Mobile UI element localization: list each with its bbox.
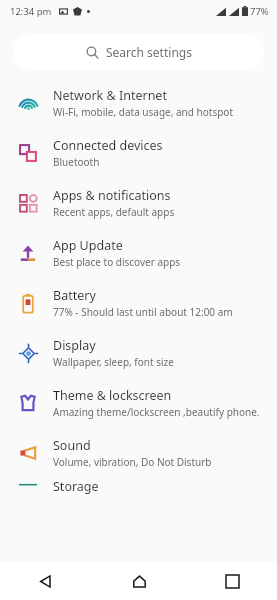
staticText: Sound: [53, 437, 91, 454]
button[interactable]: Sound: [0, 428, 277, 478]
staticText: Storage: [53, 478, 99, 495]
staticText: Wi-Fi, mobile, data usage, and hotspot: [53, 105, 233, 119]
button[interactable]: Connected devices: [0, 128, 277, 178]
staticText: Connected devices: [53, 137, 163, 154]
button[interactable]: Network & Internet: [0, 78, 277, 128]
staticText: 12:34 pm: [10, 5, 52, 18]
staticText: Display: [53, 337, 96, 354]
button[interactable]: Storage: [0, 478, 277, 504]
button[interactable]: Theme & lockscreen: [0, 378, 277, 428]
staticText: Amazing theme/lockscreen ,beautify phone…: [53, 405, 260, 419]
staticText: Theme & lockscreen: [53, 387, 172, 404]
staticText: Volume, vibration, Do Not Disturb: [53, 455, 212, 469]
button[interactable]: Back: [26, 562, 64, 600]
staticText: Battery: [53, 287, 96, 304]
staticText: 77%: [250, 5, 269, 18]
staticText: App Update: [53, 237, 123, 254]
staticText: Search settings: [106, 44, 192, 60]
button[interactable]: Display: [0, 328, 277, 378]
staticText: Network & Internet: [53, 87, 167, 104]
staticText: 77% - Should last until about 12:00 am: [53, 305, 233, 319]
button[interactable]: Home: [120, 562, 158, 600]
button[interactable]: App Update: [0, 228, 277, 278]
button[interactable]: Apps & notifications: [0, 178, 277, 228]
button[interactable]: Search settings: [13, 34, 264, 70]
staticText: Wallpaper, sleep, font size: [53, 355, 174, 369]
staticText: Best place to discover apps: [53, 255, 181, 269]
staticText: Bluetooth: [53, 155, 100, 169]
button[interactable]: Battery: [0, 278, 277, 328]
staticText: Apps & notifications: [53, 187, 171, 204]
staticText: Recent apps, default apps: [53, 205, 175, 219]
button[interactable]: Recent apps: [213, 562, 251, 600]
